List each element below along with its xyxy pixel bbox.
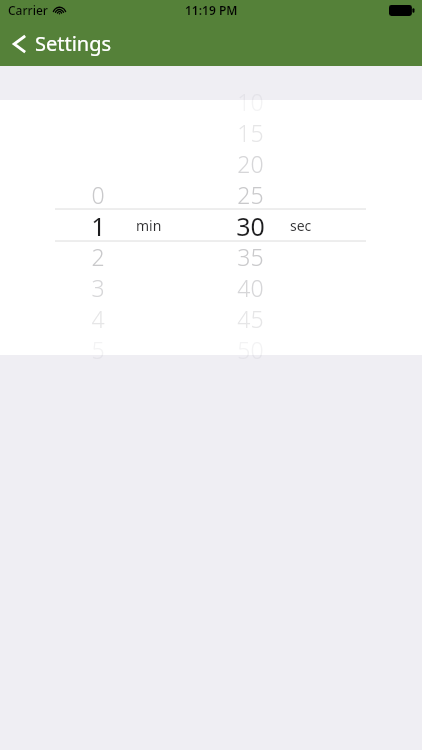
- staticText: min: [136, 216, 162, 235]
- staticText: 40: [237, 272, 264, 303]
- staticText: 30: [236, 209, 265, 241]
- button[interactable]: Minutes picker: [0, 100, 211, 355]
- staticText: 5: [91, 334, 105, 365]
- staticText: 10: [237, 86, 264, 117]
- staticText: 0: [91, 179, 105, 210]
- staticText: 2: [91, 241, 105, 272]
- staticText: sec: [290, 216, 312, 235]
- staticText: 50: [237, 334, 264, 365]
- staticText: 1: [91, 209, 106, 241]
- staticText: 3: [91, 272, 105, 303]
- staticText: Settings: [35, 30, 112, 57]
- staticText: 15: [237, 117, 264, 148]
- other: Back: [10, 32, 28, 56]
- staticText: 25: [237, 179, 264, 210]
- staticText: 20: [237, 148, 264, 179]
- staticText: 4: [91, 303, 105, 334]
- staticText: 45: [237, 303, 264, 334]
- staticText: 11:19 PM: [185, 2, 238, 18]
- button[interactable]: Seconds picker: [211, 100, 422, 355]
- staticText: Carrier: [8, 2, 48, 18]
- staticText: 35: [237, 241, 264, 272]
- button[interactable]: Back: [0, 24, 126, 63]
